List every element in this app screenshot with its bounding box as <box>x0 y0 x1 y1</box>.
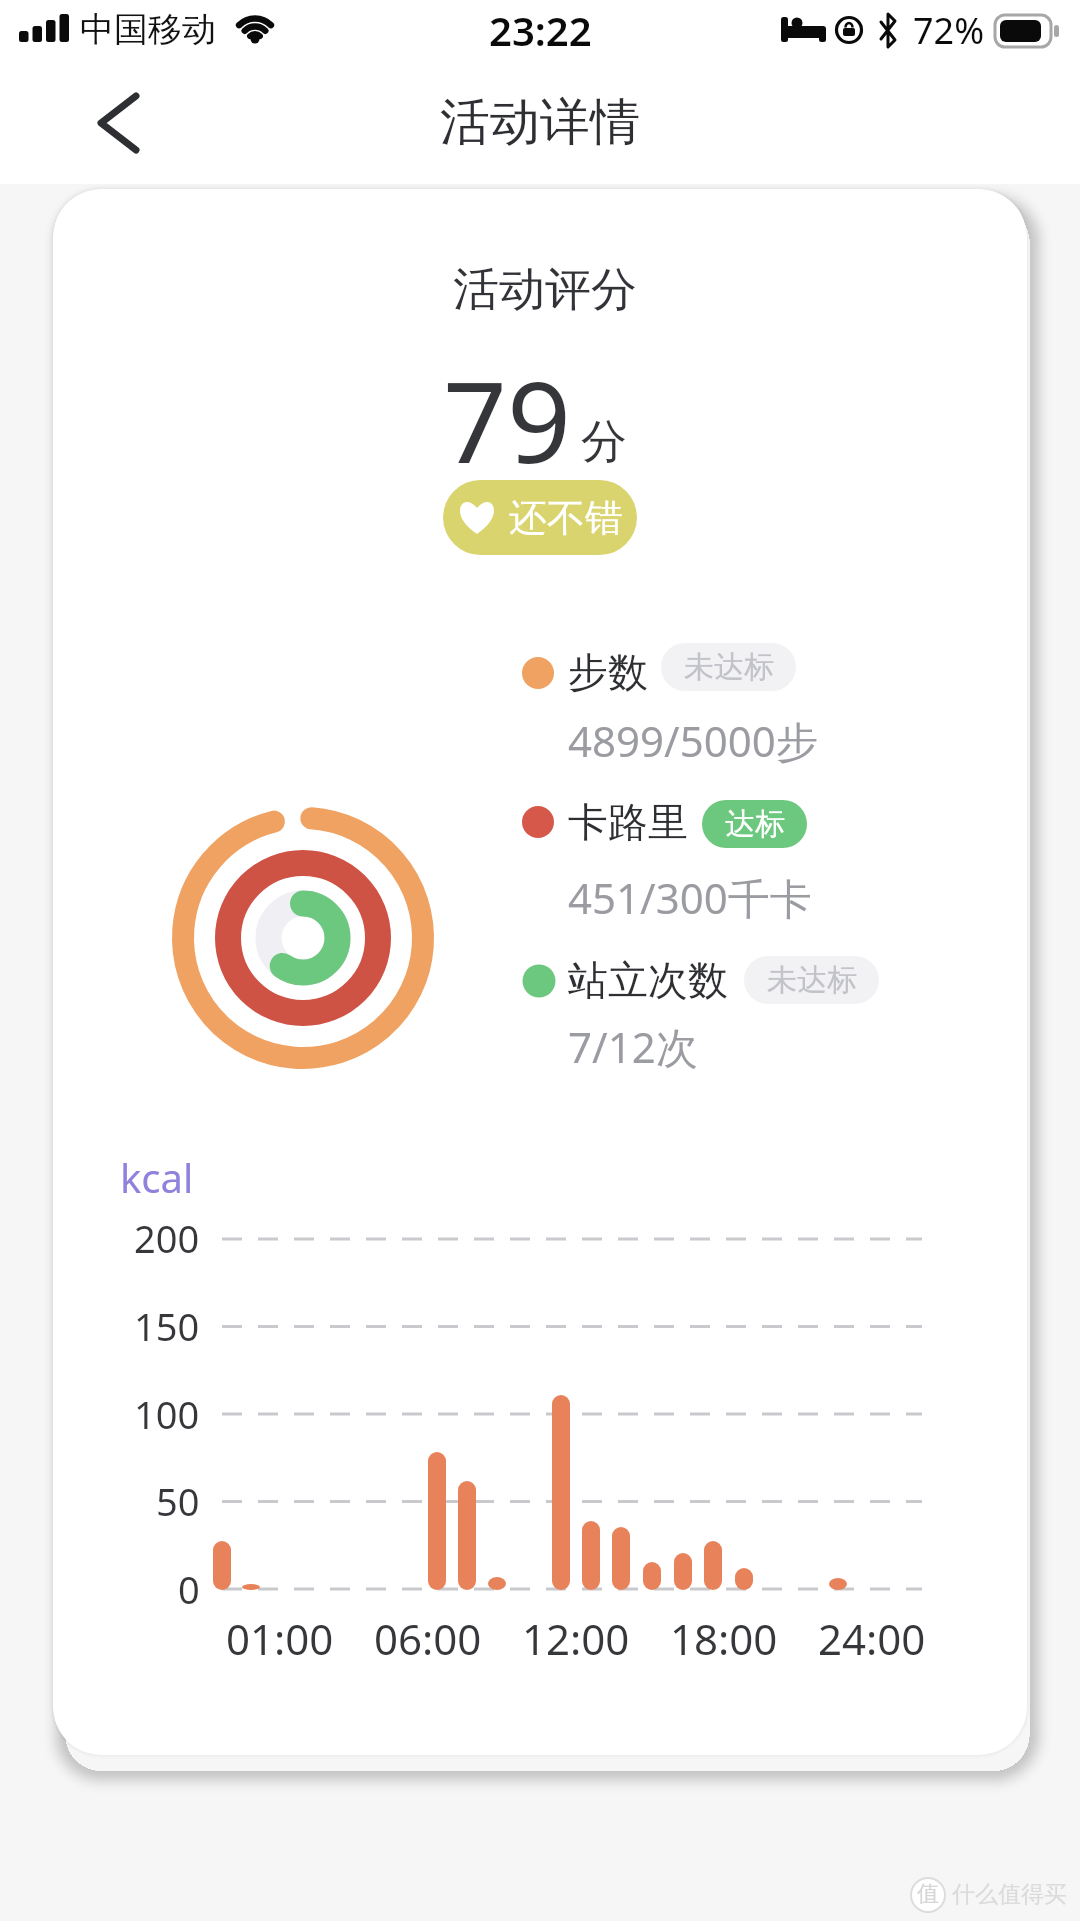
staticText: 站立次数 <box>568 955 728 1005</box>
staticText: 72% <box>913 6 985 55</box>
staticText: 活动详情 <box>440 91 640 154</box>
staticText: 7/12次 <box>568 1018 698 1075</box>
staticText: 451/300千卡 <box>568 869 812 926</box>
staticText: 79 <box>443 343 572 496</box>
staticText: 活动评分 <box>453 261 637 319</box>
staticText: 什么值得买 <box>952 1880 1067 1909</box>
staticText: 01:00 <box>226 1610 334 1667</box>
button[interactable]: 还不错 <box>443 480 637 555</box>
staticText: 18:00 <box>670 1610 778 1667</box>
staticText: 23:22 <box>489 3 592 57</box>
staticText: 0 <box>178 1563 200 1615</box>
staticText: 200 <box>134 1212 200 1264</box>
staticText: 达标 <box>725 805 785 843</box>
staticText: 150 <box>134 1300 200 1352</box>
staticText: 4899/5000步 <box>568 712 818 769</box>
staticText: 12:00 <box>522 1610 630 1667</box>
staticText: 还不错 <box>509 494 623 542</box>
staticText: 100 <box>134 1388 200 1440</box>
staticText: 步数 <box>568 647 648 697</box>
button[interactable] <box>60 75 170 170</box>
staticText: 未达标 <box>684 648 774 686</box>
staticText: kcal <box>120 1150 194 1204</box>
staticText: 卡路里 <box>568 797 688 847</box>
staticText: 值 <box>917 1880 939 1908</box>
staticText: 50 <box>156 1475 200 1527</box>
staticText: 24:00 <box>818 1610 926 1667</box>
staticText: 分 <box>581 413 627 471</box>
staticText: 未达标 <box>767 961 857 999</box>
staticText: 06:00 <box>374 1610 482 1667</box>
staticText: 中国移动 <box>80 8 216 51</box>
